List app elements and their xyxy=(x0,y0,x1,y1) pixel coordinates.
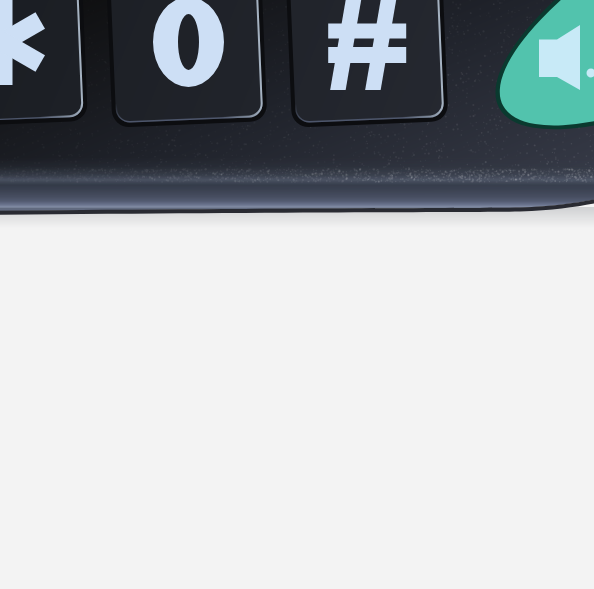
button[interactable]: Large button phone keypad close-up xyxy=(0,0,594,589)
